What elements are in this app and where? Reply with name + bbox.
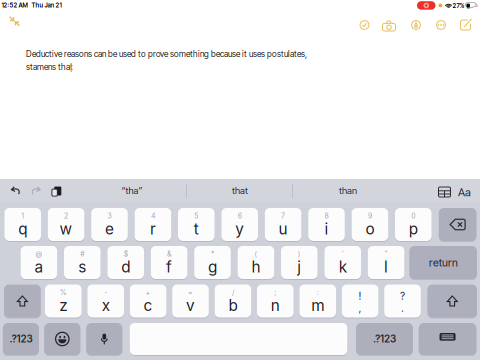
button[interactable]: More <box>432 16 450 34</box>
button[interactable]: & <box>0 0 37 33</box>
button[interactable]: Shift <box>0 0 49 33</box>
staticText: b <box>228 296 237 315</box>
staticText: Thu Jan 21 <box>31 1 61 9</box>
button[interactable]: 6 <box>0 0 37 33</box>
staticText: k <box>339 258 347 276</box>
staticText: v <box>186 296 195 315</box>
staticText: 27% <box>453 2 465 9</box>
staticText: 4 <box>151 212 155 220</box>
button[interactable]: 2 <box>0 0 37 33</box>
staticText: h <box>251 258 260 276</box>
staticText: @ <box>35 250 42 258</box>
staticText: 1 <box>21 212 24 220</box>
button[interactable]: Insert Table <box>434 183 454 201</box>
button[interactable]: .?123 <box>0 0 36 32</box>
button[interactable]: 5 <box>0 0 37 33</box>
button[interactable]: Redo <box>27 183 44 198</box>
button[interactable]: ) <box>0 0 37 33</box>
staticText: t <box>194 220 199 238</box>
staticText: % <box>60 288 67 297</box>
button[interactable]: 9 <box>0 0 37 33</box>
button[interactable]: Exit Full Screen <box>5 12 23 30</box>
staticText: ! <box>359 290 362 302</box>
button[interactable]: Dictate <box>0 0 36 32</box>
staticText: : <box>317 288 319 297</box>
button[interactable]: than <box>294 179 402 202</box>
button[interactable]: 1 <box>0 0 37 33</box>
staticText: “tha” <box>121 185 142 196</box>
button[interactable]: + <box>0 0 37 33</box>
button[interactable]: Hide Keyboard <box>0 0 58 32</box>
staticText: a <box>34 258 43 276</box>
button[interactable]: : <box>0 0 37 33</box>
staticText: 0 <box>411 212 415 220</box>
button[interactable]: # <box>0 0 37 33</box>
button[interactable]: * <box>0 0 37 33</box>
staticText: .?123 <box>9 333 32 345</box>
button[interactable]: ( <box>0 0 37 33</box>
button[interactable]: 0 <box>0 0 37 33</box>
button[interactable]: space <box>0 0 218 32</box>
staticText: w <box>60 220 73 238</box>
button[interactable]: return <box>0 0 67 33</box>
button[interactable]: / <box>0 0 37 33</box>
button[interactable]: 7 <box>0 0 37 33</box>
button[interactable]: Markup <box>407 16 425 34</box>
button[interactable]: Camera <box>378 17 399 35</box>
staticText: n <box>271 296 280 315</box>
staticText: z <box>59 296 67 315</box>
button[interactable]: ? <box>0 0 37 33</box>
button[interactable]: 8 <box>0 0 37 33</box>
button[interactable]: ; <box>0 0 37 33</box>
staticText: # <box>80 250 84 258</box>
staticText: s <box>78 258 86 276</box>
button[interactable]: New Note <box>456 16 474 34</box>
staticText: g <box>208 258 217 276</box>
button[interactable]: Delete <box>0 0 38 33</box>
staticText: + <box>146 288 151 297</box>
staticText: return <box>429 256 458 269</box>
button[interactable]: = <box>0 0 37 33</box>
button[interactable]: Format <box>454 181 475 203</box>
staticText: 5 <box>194 212 198 220</box>
button[interactable]: 3 <box>0 0 37 33</box>
staticText: p <box>409 220 418 238</box>
staticText: l <box>384 258 388 276</box>
staticText: . <box>401 302 404 314</box>
staticText: 3 <box>107 212 111 220</box>
button[interactable]: ' <box>0 0 37 33</box>
button[interactable]: Done <box>355 16 373 34</box>
staticText: , <box>359 302 362 314</box>
button[interactable]: Paste <box>47 181 64 201</box>
staticText: m <box>311 296 324 315</box>
staticText: Aa <box>458 185 471 199</box>
staticText: d <box>121 258 130 276</box>
button[interactable]: $ <box>0 0 37 33</box>
button[interactable]: that <box>187 179 293 202</box>
staticText: = <box>188 288 193 297</box>
staticText: 6 <box>238 212 242 220</box>
staticText: x <box>102 296 110 315</box>
staticText: - <box>104 288 107 297</box>
button[interactable]: Emoji <box>0 0 36 32</box>
button[interactable]: 4 <box>0 0 37 33</box>
staticText: ” <box>385 250 388 258</box>
button[interactable]: “tha” <box>77 179 187 202</box>
button[interactable]: @ <box>0 0 37 33</box>
staticText: & <box>167 250 171 258</box>
button[interactable]: ” <box>0 0 37 33</box>
button[interactable]: .?123 <box>0 0 57 32</box>
staticText: 12:52 AM <box>1 1 27 9</box>
button[interactable]: ! <box>0 0 37 33</box>
button[interactable]: Shift <box>0 0 37 33</box>
staticText: than <box>339 185 357 196</box>
button[interactable]: - <box>0 0 37 33</box>
staticText: .?123 <box>373 333 396 345</box>
staticText: e <box>105 220 114 238</box>
staticText: $ <box>124 250 128 258</box>
staticText: Deductive reasons can be used to prove s… <box>26 49 307 59</box>
button[interactable]: Undo <box>7 183 24 198</box>
button[interactable]: % <box>0 0 37 33</box>
staticText: j <box>297 258 301 276</box>
staticText: i <box>324 220 328 238</box>
